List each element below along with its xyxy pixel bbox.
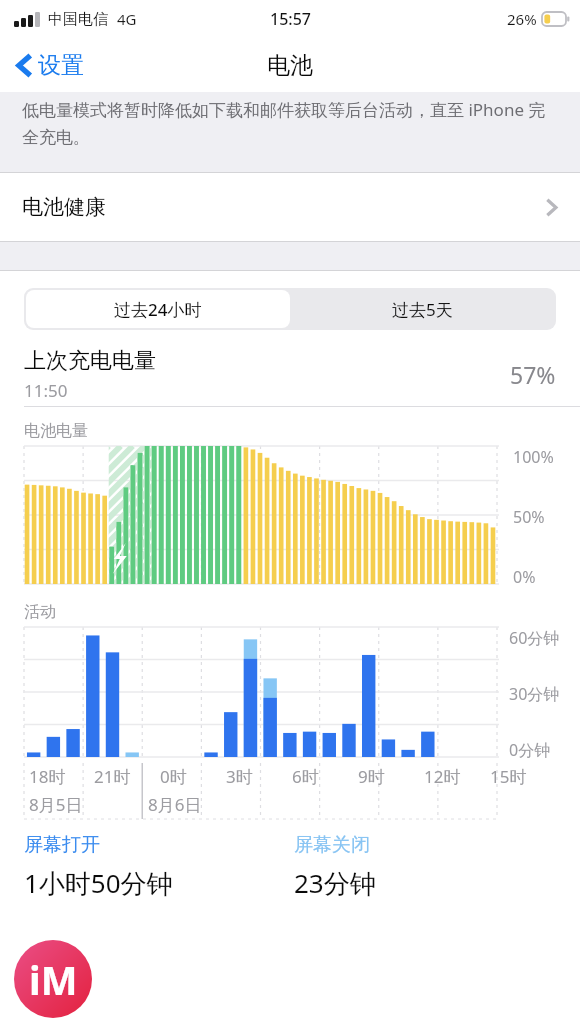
staticText: 过去24小时 <box>114 298 202 321</box>
staticText: 过去5天 <box>392 298 453 321</box>
staticText: 1小时50分钟 <box>24 865 173 901</box>
staticText: 8月5日 <box>29 793 83 816</box>
staticText: 电池 <box>267 51 313 80</box>
staticText: 0时 <box>160 765 187 788</box>
staticText: iM <box>29 953 78 1006</box>
staticText: 屏幕关闭 <box>294 833 370 857</box>
staticText: 57% <box>510 359 556 390</box>
button[interactable]: 过去24小时 <box>26 290 290 328</box>
staticText: 设置 <box>38 51 84 80</box>
staticText: 低电量模式将暂时降低如下载和邮件获取等后台活动，直至 iPhone 完全充电。 <box>22 98 560 148</box>
staticText: 23分钟 <box>294 865 376 901</box>
button[interactable]: 屏幕打开 <box>24 833 294 901</box>
staticText: 12时 <box>424 765 461 788</box>
button[interactable]: 电池健康 <box>0 173 580 241</box>
other: 电池健康 <box>545 197 558 218</box>
staticText: 活动 <box>24 602 56 622</box>
staticText: 15时 <box>490 765 527 788</box>
staticText: 18时 <box>29 765 66 788</box>
staticText: 26% <box>507 9 537 29</box>
button[interactable]: 过去5天 <box>290 290 554 328</box>
staticText: 6时 <box>292 765 319 788</box>
staticText: 3时 <box>226 765 253 788</box>
staticText: 8月6日 <box>148 793 202 816</box>
staticText: 9时 <box>358 765 385 788</box>
staticText: 0% <box>513 566 536 588</box>
staticText: 电池健康 <box>22 194 106 220</box>
staticText: 21时 <box>94 765 131 788</box>
staticText: 60分钟 <box>509 627 560 649</box>
staticText: 15:57 <box>270 8 311 30</box>
staticText: 0分钟 <box>509 739 551 761</box>
staticText: 100% <box>513 446 554 468</box>
staticText: 屏幕打开 <box>24 833 100 857</box>
staticText: 上次充电电量 <box>24 347 156 375</box>
staticText: 11:50 <box>24 379 68 402</box>
staticText: 4G <box>117 9 137 29</box>
staticText: 电池电量 <box>24 421 88 441</box>
button[interactable]: 设置 <box>10 45 90 86</box>
staticText: 30分钟 <box>509 683 560 705</box>
button[interactable]: 屏幕关闭 <box>294 833 564 901</box>
staticText: 中国电信 <box>48 10 108 29</box>
staticText: 50% <box>513 506 545 528</box>
